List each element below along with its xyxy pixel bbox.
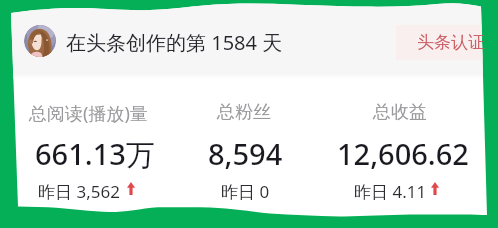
- other: Increase: [127, 182, 135, 195]
- staticText: 在头条创作的第 1584 天: [66, 29, 283, 56]
- staticText: 总粉丝: [217, 101, 271, 124]
- button[interactable]: Profile avatar: [24, 25, 56, 57]
- staticText: 昨日 0: [221, 180, 270, 203]
- staticText: 总阅读(播放)量: [29, 101, 148, 126]
- button[interactable]: 头条认证: [396, 25, 497, 60]
- staticText: 头条认证: [417, 32, 485, 53]
- other: Increase: [431, 182, 439, 195]
- staticText: 8,594: [208, 134, 283, 173]
- staticText: 12,606.62: [337, 134, 469, 173]
- staticText: 总收益: [373, 101, 427, 124]
- staticText: 昨日 4.11: [354, 180, 427, 203]
- staticText: 昨日 3,562: [38, 180, 120, 203]
- staticText: 661.13万: [35, 134, 155, 174]
